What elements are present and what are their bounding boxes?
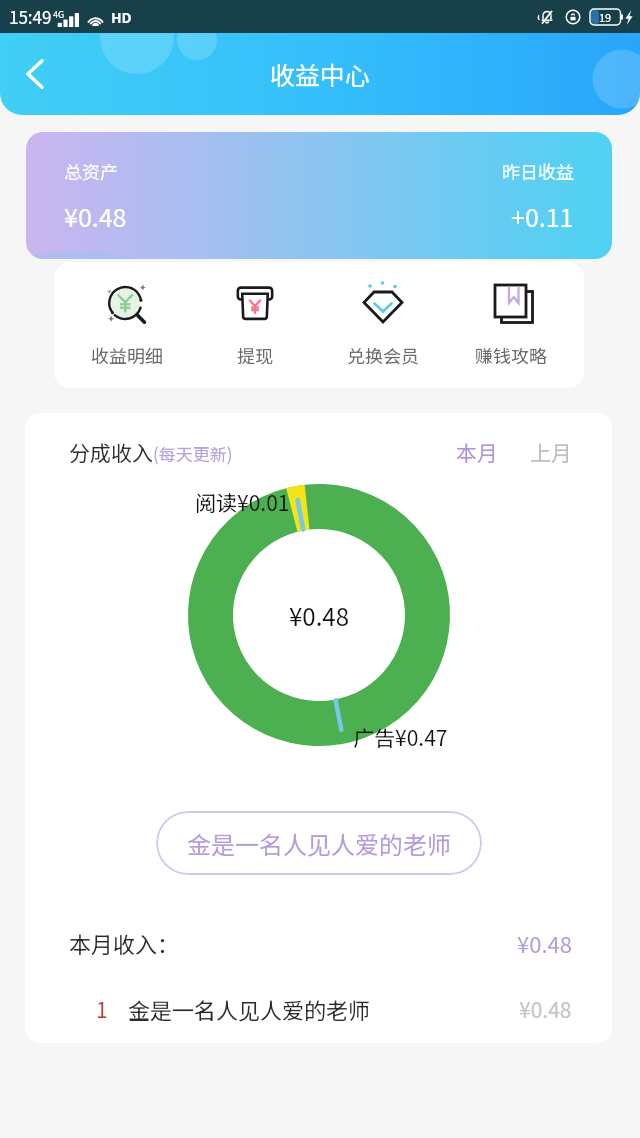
staticText: 本月 — [456, 437, 498, 467]
staticText: 收益明细 — [91, 342, 163, 368]
staticText: 上月 — [530, 437, 572, 467]
staticText: 4G — [53, 8, 65, 21]
staticText: 昨日收益 — [502, 158, 574, 184]
button[interactable]: 兑换会员 — [319, 262, 447, 368]
staticText: 金是一名人见人爱的老师 — [128, 993, 371, 1025]
staticText: +0.11 — [511, 198, 574, 234]
staticText: 19 — [599, 9, 612, 25]
staticText: ¥0.48 — [519, 994, 572, 1024]
staticText: 分成收入(每天更新) — [69, 437, 233, 467]
button[interactable]: 上月 — [530, 437, 572, 467]
button[interactable]: 金是一名人见人爱的老师 — [156, 811, 482, 875]
button[interactable]: 1 — [69, 993, 572, 1025]
staticText: 广告¥0.47 — [353, 722, 448, 752]
staticText: 本月收入： — [69, 927, 180, 959]
staticText: 1 — [96, 994, 108, 1024]
staticText: 总资产 — [64, 158, 118, 184]
staticText: ¥0.48 — [289, 598, 349, 633]
button[interactable]: 本月 — [456, 437, 498, 467]
staticText: 阅读¥0.01 — [195, 487, 290, 517]
staticText: 提现 — [237, 342, 273, 368]
button[interactable]: 收益明细 — [62, 262, 191, 368]
button[interactable]: 提现 — [191, 262, 319, 368]
staticText: 赚钱攻略 — [475, 342, 547, 368]
staticText: 兑换会员 — [347, 342, 419, 368]
button[interactable]: Back — [9, 48, 61, 100]
staticText: 金是一名人见人爱的老师 — [187, 826, 451, 861]
staticText: HD — [111, 7, 132, 27]
staticText: 15:49 — [9, 4, 52, 29]
staticText: ¥0.48 — [517, 927, 572, 959]
staticText: ¥0.48 — [64, 198, 127, 234]
button[interactable]: 赚钱攻略 — [447, 262, 575, 368]
staticText: 收益中心 — [270, 56, 371, 92]
